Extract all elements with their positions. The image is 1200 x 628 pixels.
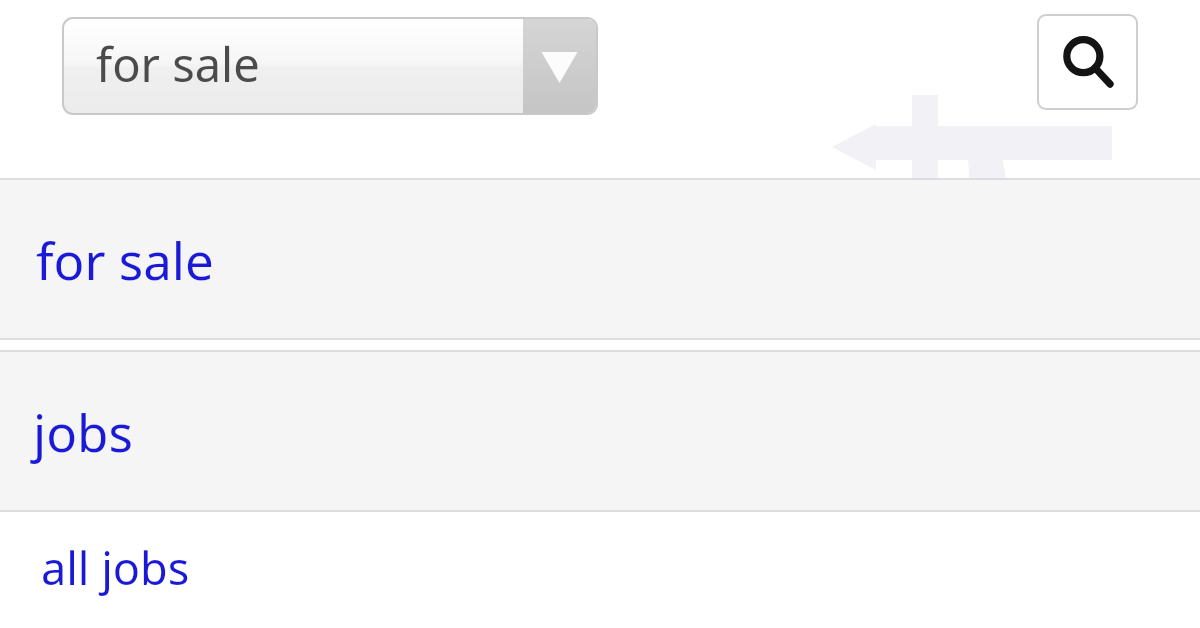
- button[interactable]: for sale: [64, 19, 596, 113]
- staticText: for sale: [36, 225, 214, 294]
- staticText: jobs: [33, 397, 133, 466]
- button[interactable]: all jobs: [0, 512, 1200, 628]
- staticText: all jobs: [41, 537, 190, 598]
- staticText: for sale: [96, 32, 260, 96]
- button[interactable]: Search: [1039, 16, 1136, 108]
- button[interactable]: for sale: [0, 180, 1200, 338]
- button[interactable]: jobs: [0, 352, 1200, 510]
